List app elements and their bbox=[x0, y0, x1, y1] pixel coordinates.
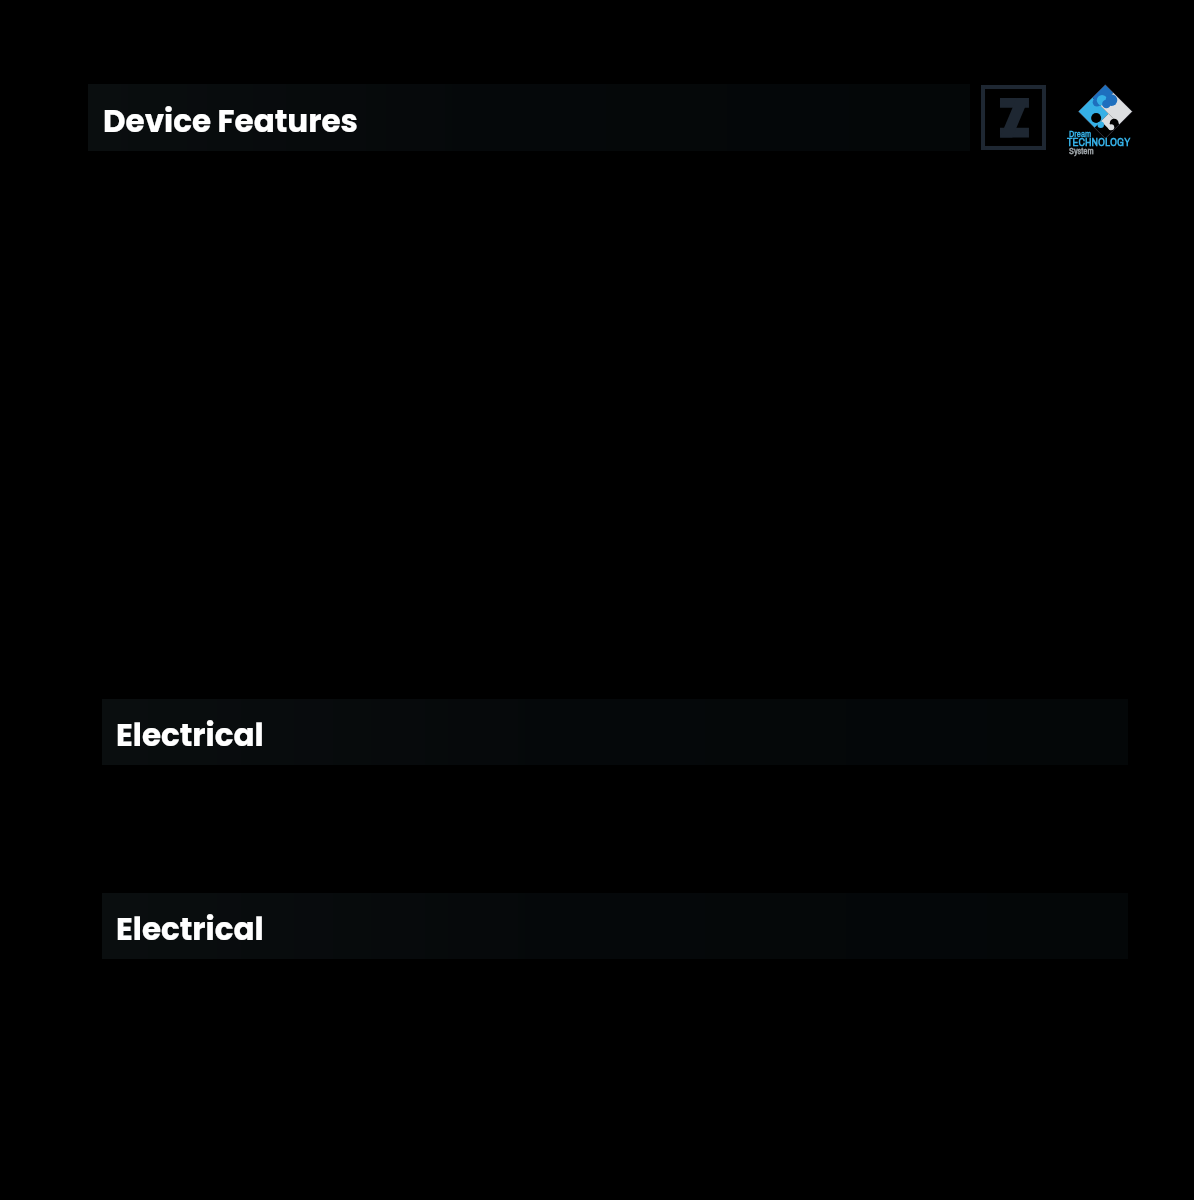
button[interactable]: Dream Technology System logo bbox=[1068, 84, 1144, 160]
button[interactable]: Electrical bbox=[102, 893, 1128, 959]
staticText: Electrical bbox=[116, 907, 264, 950]
button[interactable]: Device Features bbox=[88, 84, 970, 151]
staticText: Device Features bbox=[103, 99, 358, 142]
button[interactable]: Brand logo bbox=[981, 85, 1046, 150]
button[interactable]: Electrical bbox=[102, 699, 1128, 765]
staticText: Dream bbox=[1069, 128, 1129, 140]
staticText: System bbox=[1069, 145, 1129, 157]
staticText: TECHNOLOGY bbox=[1067, 135, 1147, 150]
staticText: Electrical bbox=[116, 713, 264, 756]
